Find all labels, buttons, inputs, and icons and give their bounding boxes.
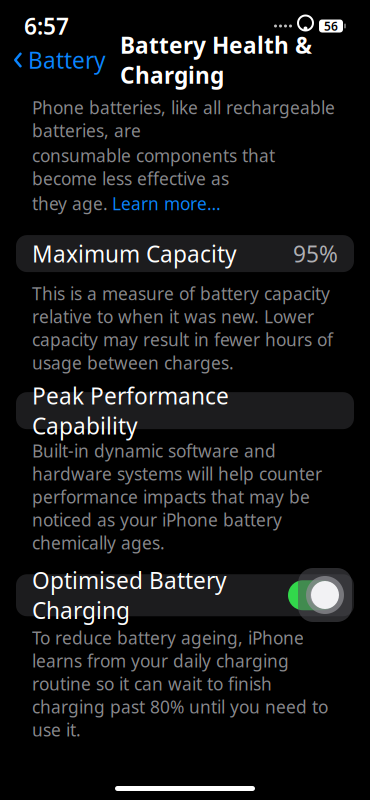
staticText: Optimised Battery Charging	[32, 565, 227, 625]
staticText: Maximum Capacity	[32, 238, 237, 269]
staticText: Built-in dynamic software and hardware s…	[32, 439, 322, 554]
staticText: Peak Performance Capability	[32, 381, 229, 441]
staticText: they age.	[32, 192, 108, 215]
button[interactable]: Battery	[12, 39, 106, 81]
staticText: Phone batteries, like all rechargeable b…	[32, 96, 335, 142]
staticText: To reduce battery ageing, iPhone learns …	[32, 626, 328, 741]
button[interactable]: Optimised Battery Charging toggle	[288, 580, 338, 610]
button[interactable]: Learn more…	[112, 192, 221, 215]
staticText: 6:57	[24, 11, 69, 41]
staticText: consumable components that become less e…	[32, 144, 275, 190]
button[interactable]: AssistiveTouch	[298, 568, 352, 622]
staticText: 56	[324, 18, 338, 34]
staticText: Learn more…	[112, 192, 221, 215]
staticText: Battery	[28, 45, 106, 75]
staticText: Battery Health & Charging	[120, 30, 312, 90]
staticText: 95%	[293, 238, 338, 269]
staticText: This is a measure of battery capacity re…	[32, 282, 333, 374]
button[interactable]: Peak Performance Capability	[16, 392, 354, 429]
